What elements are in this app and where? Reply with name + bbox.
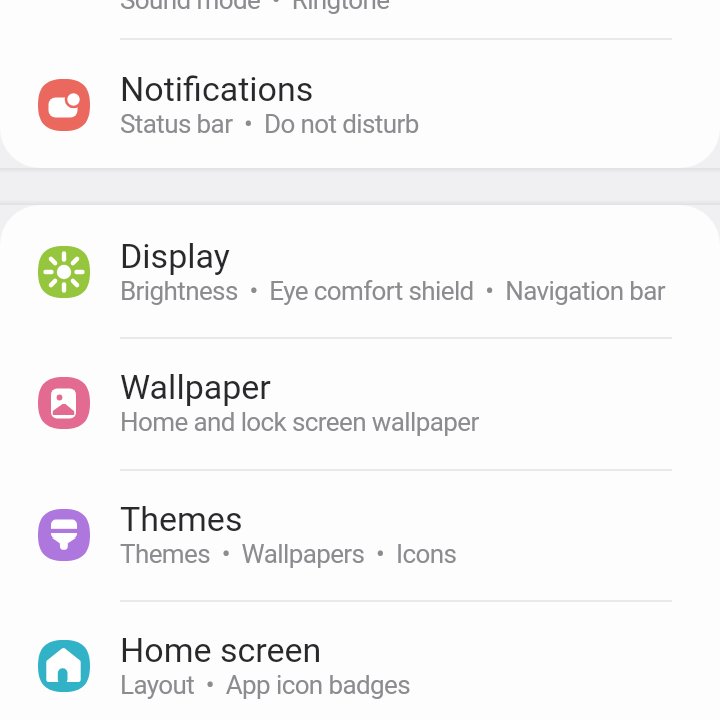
staticText: Notifications <box>120 69 314 109</box>
staticText: Themes • Wallpapers • Icons <box>120 539 457 569</box>
staticText: Brightness • Eye comfort shield • Naviga… <box>120 276 666 306</box>
button[interactable]: Themes <box>0 469 720 600</box>
button[interactable]: Notifications <box>0 39 720 170</box>
staticText: Layout • App icon badges <box>120 670 411 700</box>
button[interactable]: Home screen <box>0 600 720 720</box>
button[interactable]: Wallpaper <box>0 337 720 468</box>
staticText: Home screen <box>120 630 322 670</box>
button[interactable]: Display <box>0 206 720 337</box>
staticText: Home and lock screen wallpaper <box>120 407 479 437</box>
staticText: Wallpaper <box>120 367 271 407</box>
staticText: Sound mode • Ringtone <box>120 0 390 15</box>
staticText: Themes <box>120 499 243 539</box>
staticText: Status bar • Do not disturb <box>120 109 419 139</box>
staticText: Display <box>120 236 230 276</box>
